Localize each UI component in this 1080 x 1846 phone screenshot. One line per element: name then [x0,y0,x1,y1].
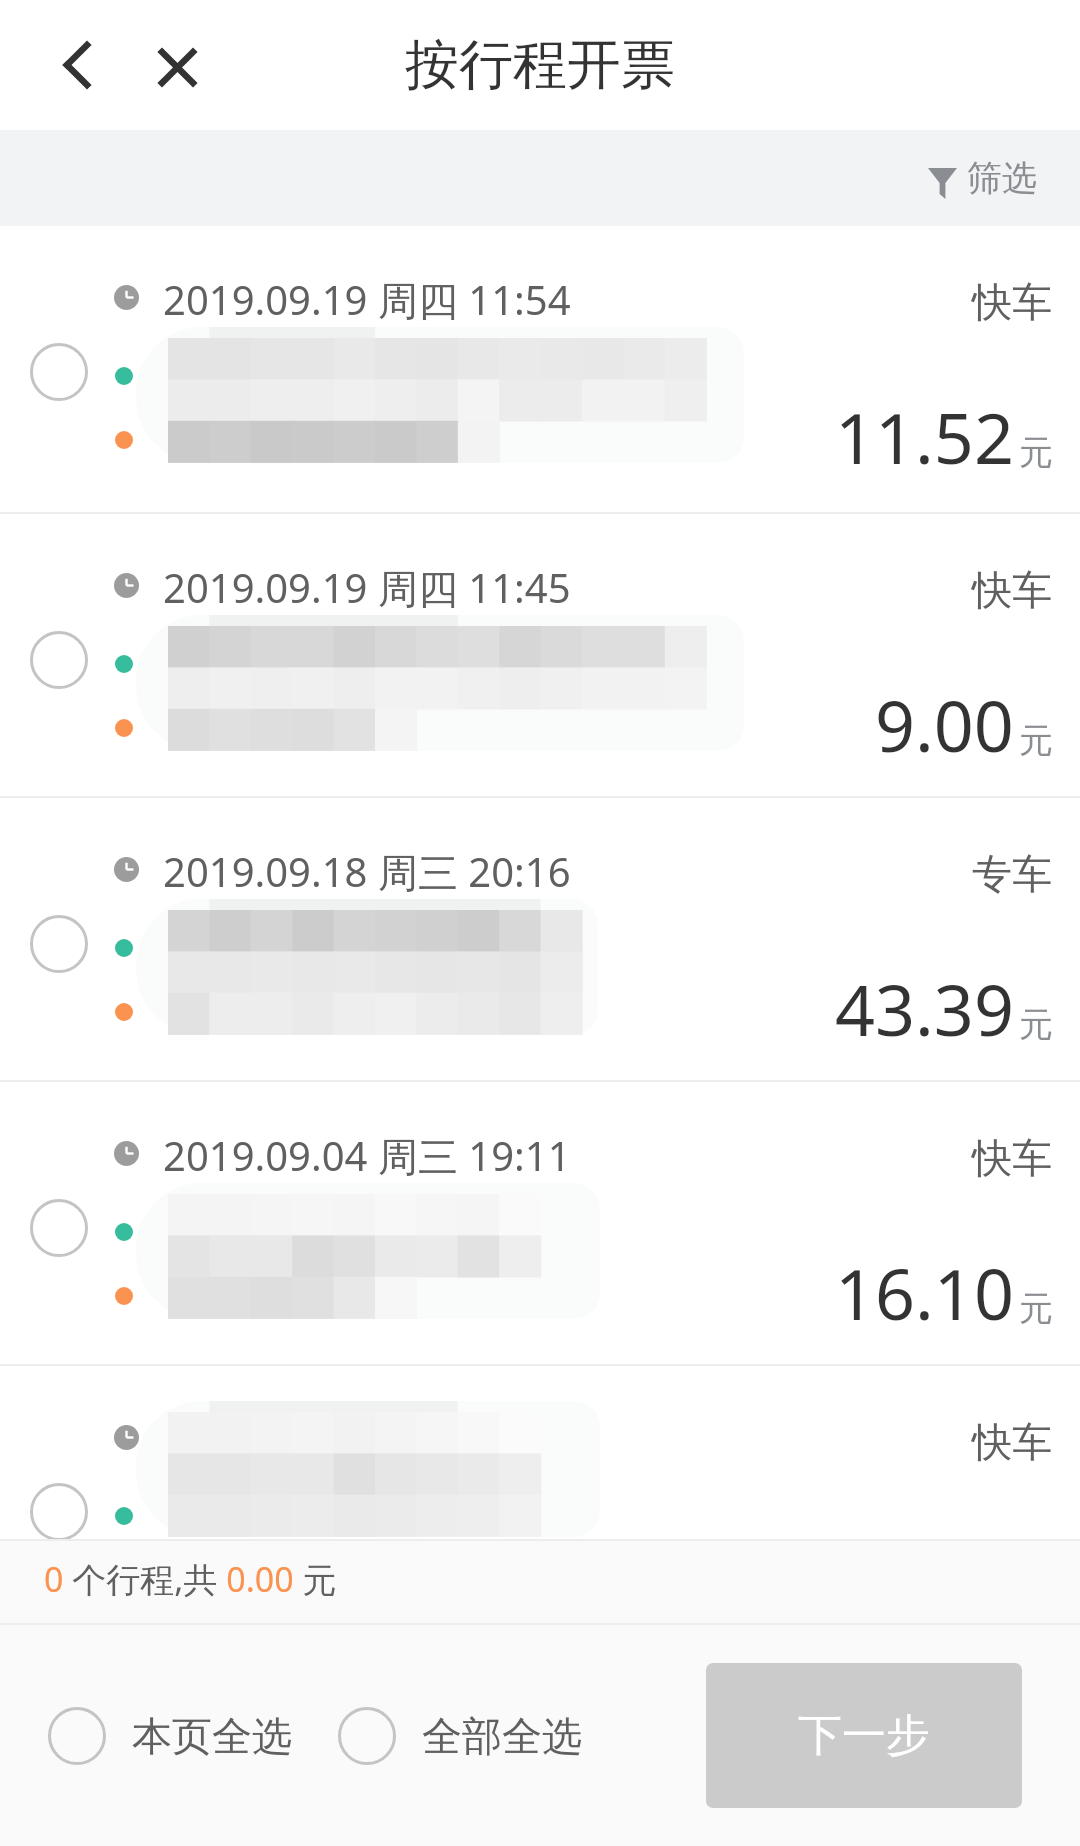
staticText: 2019.09.18 周三 20:16 [163,844,571,899]
button[interactable]: Select trip [10,611,108,709]
staticText: 元 [1019,431,1053,474]
staticText: 2019.09.04 周三 19:11 [163,1128,571,1183]
button[interactable]: Select trip [10,895,108,993]
staticText: 下一步 [798,1708,930,1763]
staticText: 元 [1019,719,1053,762]
staticText: 按行程开票 [405,31,675,99]
button[interactable]: Select trip [10,323,108,421]
staticText: 43.39 [835,961,1014,1056]
button[interactable]: Select trip [0,1366,1080,1539]
staticText: 元 [1019,1003,1053,1046]
button[interactable]: Select trip [0,798,1080,1082]
button[interactable]: Select trip [0,514,1080,798]
staticText: 0 个行程,共 0.00 元 [44,1556,337,1602]
button[interactable]: Close [137,27,217,107]
staticText: 快车 [972,277,1052,327]
staticText: 快车 [972,565,1052,615]
button[interactable]: Select trip [10,1463,108,1539]
staticText: 快车 [972,1133,1052,1183]
button[interactable]: Select trip [10,1179,108,1277]
staticText: 16.10 [835,1245,1014,1340]
button[interactable]: Select trip [0,1082,1080,1366]
button[interactable]: Select trip [0,226,1080,510]
button[interactable]: 全部全选 [338,1707,582,1765]
button[interactable]: Back [37,25,117,105]
staticText: 本页全选 [132,1711,292,1761]
staticText: 快车 [972,1417,1052,1467]
button[interactable]: 下一步 [706,1663,1022,1808]
staticText: 元 [1019,1287,1053,1330]
button[interactable]: 筛选 [928,156,1037,200]
staticText: 筛选 [967,156,1037,200]
button[interactable]: 本页全选 [48,1707,292,1765]
staticText: 9.00 [875,677,1014,772]
staticText: 11.52 [835,389,1014,484]
staticText: 全部全选 [422,1711,582,1761]
staticText: 2019.09.19 周四 11:54 [163,272,571,327]
staticText: 2019.09.19 周四 11:45 [163,560,571,615]
staticText: 专车 [972,849,1052,899]
